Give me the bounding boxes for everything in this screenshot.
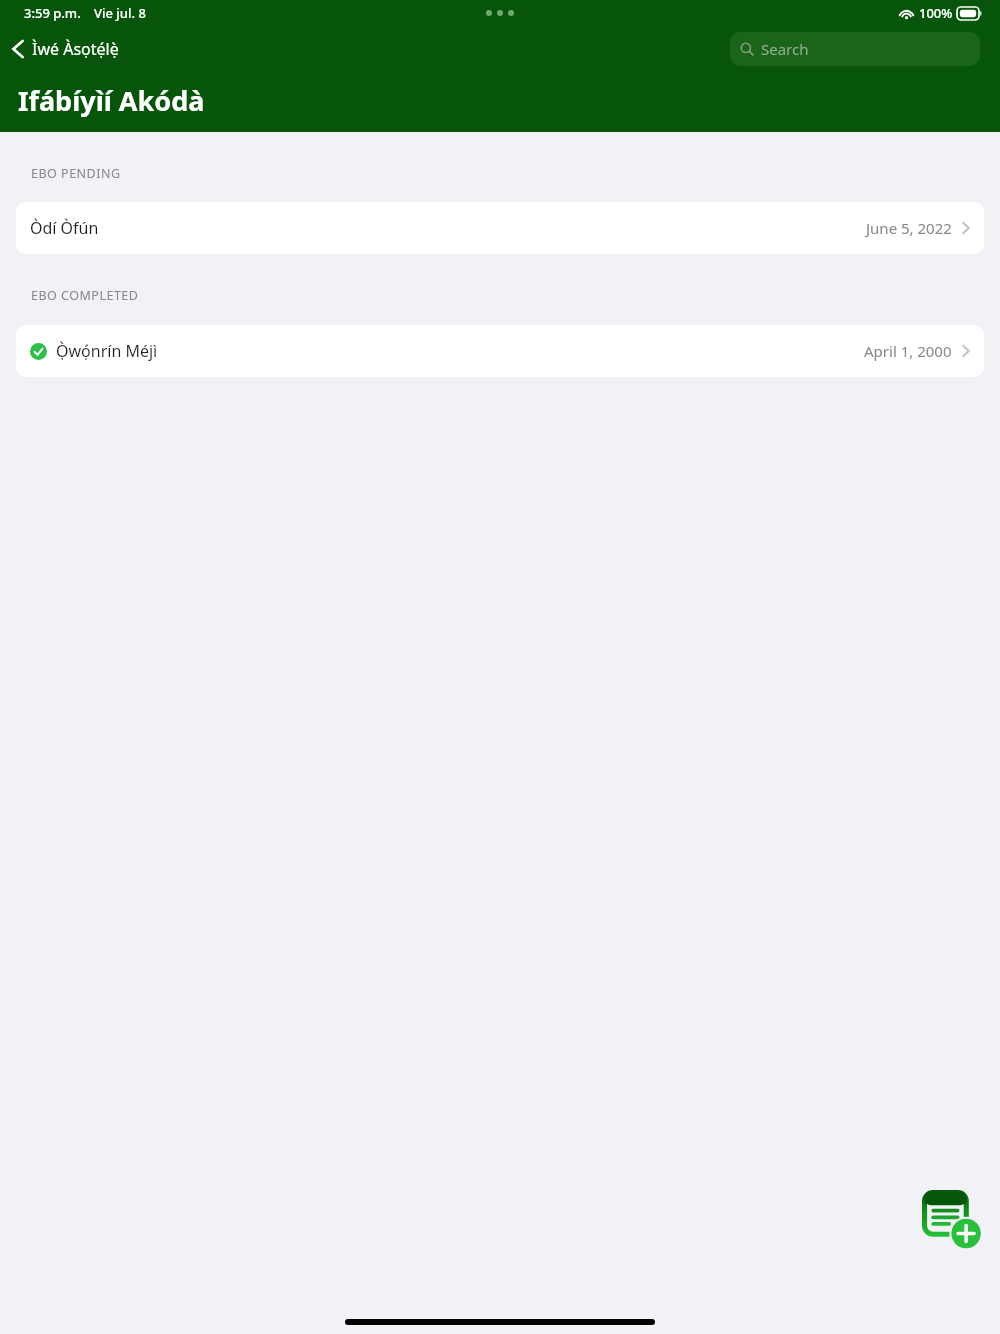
staticText: 3:59 p.m. [24, 4, 81, 22]
staticText: June 5, 2022 [866, 218, 952, 238]
button[interactable]: Ọ̀wọ́nrín Méjì [16, 325, 984, 377]
staticText: Ìwé Àsọtẹ́lẹ̀ [32, 38, 119, 60]
staticText: 100% [919, 4, 953, 22]
staticText: Ifábíyìí Akódà [18, 82, 205, 119]
button[interactable]: Ìwé Àsọtẹ́lẹ̀ [0, 32, 131, 66]
staticText: Ọ̀wọ́nrín Méjì [56, 340, 158, 362]
staticText: EBO PENDING [31, 165, 121, 182]
button[interactable]: Search [730, 32, 980, 66]
button[interactable]: Òdí Òfún [16, 202, 984, 254]
staticText: Vie jul. 8 [94, 4, 146, 22]
button[interactable]: New entry [916, 1184, 988, 1256]
staticText: April 1, 2000 [864, 341, 952, 361]
staticText: Òdí Òfún [30, 217, 99, 239]
staticText: EBO COMPLETED [31, 287, 139, 304]
staticText: Search [761, 39, 809, 59]
